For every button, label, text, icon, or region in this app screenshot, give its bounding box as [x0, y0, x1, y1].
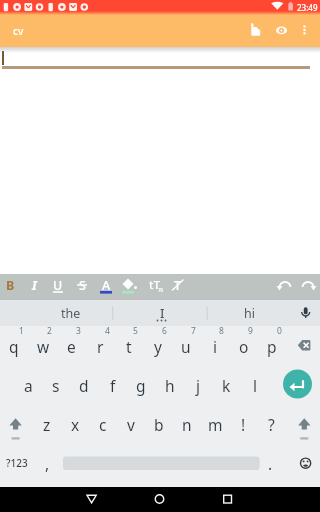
staticText: U	[53, 277, 63, 294]
button[interactable]	[63, 456, 260, 470]
staticText: z	[43, 414, 51, 435]
button[interactable]: S	[58, 273, 106, 297]
staticText: a	[24, 375, 33, 396]
button[interactable]: !	[219, 412, 267, 436]
staticText: c	[99, 414, 107, 435]
staticText: 7	[191, 325, 196, 337]
staticText: A	[102, 277, 111, 294]
button[interactable]: y	[134, 334, 182, 358]
button[interactable]: s	[32, 373, 80, 397]
staticText: h	[165, 375, 175, 396]
staticText: !	[241, 414, 246, 435]
button[interactable]: l	[231, 373, 279, 397]
staticText: S	[79, 277, 86, 294]
button[interactable]: I	[138, 301, 186, 325]
button[interactable]: m	[191, 412, 239, 436]
button[interactable]: .	[246, 451, 294, 475]
staticText: v	[127, 414, 135, 435]
staticText: k	[222, 375, 231, 396]
button[interactable]	[290, 330, 320, 360]
button[interactable]: tT	[130, 273, 178, 297]
button[interactable]	[268, 18, 296, 46]
button[interactable]: T	[154, 273, 202, 297]
button[interactable]: d	[60, 373, 108, 397]
staticText: 2	[47, 325, 52, 337]
button[interactable]: hi	[225, 301, 273, 325]
staticText: s	[52, 375, 60, 396]
staticText: q	[9, 336, 19, 357]
button[interactable]: A	[82, 273, 130, 297]
staticText: y	[154, 336, 162, 357]
button[interactable]: U	[34, 273, 82, 297]
button[interactable]	[214, 487, 241, 512]
button[interactable]	[274, 274, 297, 300]
button[interactable]: c	[79, 412, 127, 436]
staticText: m	[208, 414, 223, 435]
button[interactable]: the	[47, 301, 95, 325]
button[interactable]	[294, 300, 320, 326]
staticText: tT	[149, 277, 160, 293]
button[interactable]: I	[10, 273, 58, 297]
button[interactable]: h	[146, 373, 194, 397]
button[interactable]: n	[163, 412, 211, 436]
button[interactable]: p	[248, 334, 296, 358]
staticText: e	[67, 336, 76, 357]
staticText: f	[110, 375, 116, 396]
staticText: 3	[76, 325, 81, 337]
button[interactable]	[291, 447, 317, 473]
button[interactable]: w	[19, 334, 67, 358]
button[interactable]: z	[23, 412, 71, 436]
button[interactable]	[296, 18, 320, 46]
button[interactable]	[2, 406, 28, 436]
button[interactable]: u	[162, 334, 210, 358]
staticText: l	[253, 375, 257, 396]
staticText: the	[61, 305, 81, 322]
staticText: 0	[277, 325, 282, 337]
staticText: b	[154, 414, 164, 435]
button[interactable]: a	[4, 373, 52, 397]
staticText: d	[79, 375, 89, 396]
staticText: t	[126, 336, 132, 357]
staticText: 4	[105, 325, 110, 337]
staticText: 1	[19, 325, 24, 337]
button[interactable]	[146, 487, 173, 512]
staticText: I	[160, 305, 165, 322]
staticText: I	[32, 277, 37, 294]
staticText: o	[239, 336, 249, 357]
staticText: .	[268, 453, 273, 474]
button[interactable]	[297, 274, 320, 300]
staticText: 23:49	[297, 2, 318, 13]
button[interactable]: r	[76, 334, 124, 358]
button[interactable]: i	[191, 334, 239, 358]
button[interactable]: ?	[247, 412, 295, 436]
staticText: w	[37, 336, 50, 357]
button[interactable]	[0, 274, 320, 300]
button[interactable]: k	[202, 373, 250, 397]
button[interactable]: v	[107, 412, 155, 436]
button[interactable]: j	[174, 373, 222, 397]
button[interactable]: ,	[23, 451, 71, 475]
button[interactable]	[240, 18, 268, 46]
button[interactable]	[291, 406, 317, 436]
button[interactable]	[78, 487, 105, 512]
button[interactable]: e	[47, 334, 95, 358]
staticText: 8	[219, 325, 224, 337]
staticText: 70	[158, 287, 164, 293]
button[interactable]: x	[51, 412, 99, 436]
staticText: hi	[244, 305, 255, 322]
staticText: p	[267, 336, 277, 357]
button[interactable]: o	[220, 334, 268, 358]
button[interactable]: g	[117, 373, 165, 397]
button[interactable]: f	[89, 373, 137, 397]
button[interactable]: b	[135, 412, 183, 436]
button[interactable]: ?123	[0, 451, 41, 475]
staticText: ,	[45, 453, 50, 474]
button[interactable]	[283, 369, 313, 399]
staticText: T	[174, 277, 182, 294]
staticText: i	[213, 336, 217, 357]
button[interactable]: q	[0, 334, 38, 358]
button[interactable]: B	[0, 273, 34, 297]
staticText: x	[71, 414, 80, 435]
button[interactable]: t	[105, 334, 153, 358]
staticText: 9	[248, 325, 253, 337]
